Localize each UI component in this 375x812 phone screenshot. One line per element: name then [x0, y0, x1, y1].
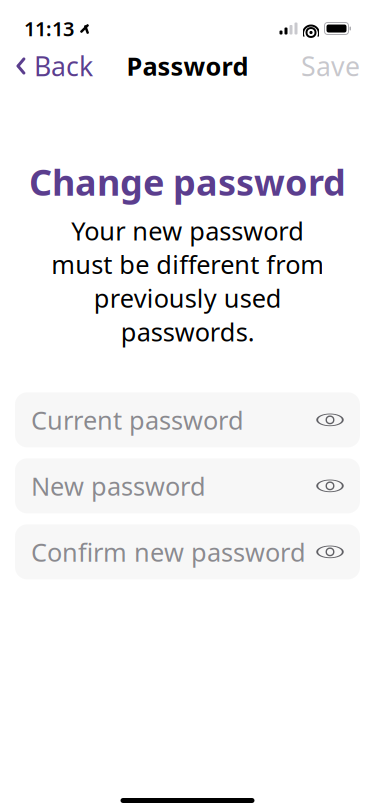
staticText: Current password	[31, 403, 244, 437]
button[interactable]: Back	[0, 40, 108, 92]
button[interactable]: New password	[15, 458, 360, 513]
staticText: New password	[31, 469, 206, 503]
staticText: Password	[126, 49, 248, 83]
button[interactable]: Current password	[15, 392, 360, 447]
staticText: Change password	[29, 158, 346, 206]
staticText: Back	[34, 48, 93, 84]
staticText: Confirm new password	[31, 535, 306, 569]
staticText: 11:13	[24, 15, 74, 42]
staticText: Your new password must be different from…	[51, 214, 324, 348]
staticText: Save	[301, 48, 360, 84]
button[interactable]: Confirm new password	[15, 524, 360, 579]
button[interactable]: Save	[286, 40, 375, 92]
